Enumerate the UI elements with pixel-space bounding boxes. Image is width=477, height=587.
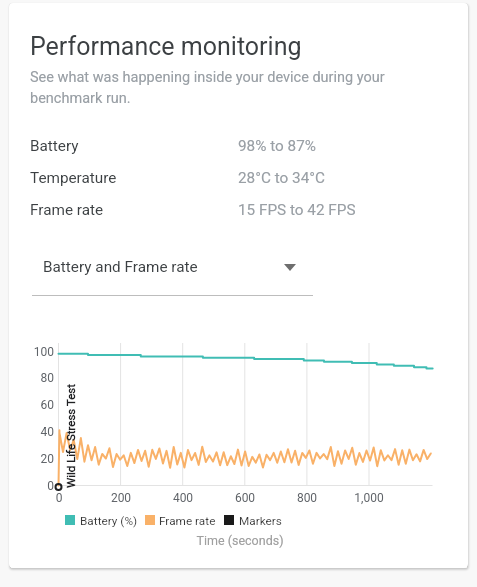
staticText: 400 <box>159 491 207 505</box>
staticText: Markers <box>239 514 282 528</box>
staticText: 600 <box>221 491 269 505</box>
staticText: 0 <box>35 491 83 505</box>
staticText: Battery (%) <box>80 514 138 528</box>
staticText: 28°C to 34°C <box>238 169 325 187</box>
staticText: Temperature <box>30 169 117 187</box>
staticText: 100 <box>26 345 54 359</box>
staticText: 1,000 <box>345 491 393 505</box>
staticText: 0 <box>26 479 54 493</box>
staticText: 60 <box>26 398 54 412</box>
staticText: 200 <box>97 491 145 505</box>
staticText: Frame rate <box>30 201 104 219</box>
staticText: 15 FPS to 42 FPS <box>238 201 356 219</box>
staticText: 98% to 87% <box>238 137 316 155</box>
staticText: Wild Life Stress Test <box>64 366 77 506</box>
staticText: Performance monitoring <box>30 32 302 61</box>
staticText: 800 <box>283 491 331 505</box>
staticText: Battery and Frame rate <box>43 258 198 276</box>
staticText: See what was happening inside your devic… <box>30 69 402 106</box>
button[interactable]: Battery and Frame rate <box>32 249 313 295</box>
staticText: Frame rate <box>159 514 216 528</box>
staticText: 80 <box>26 371 54 385</box>
staticText: 40 <box>26 425 54 439</box>
staticText: 20 <box>26 452 54 466</box>
staticText: Time (seconds) <box>190 533 290 548</box>
staticText: Battery <box>30 137 79 155</box>
